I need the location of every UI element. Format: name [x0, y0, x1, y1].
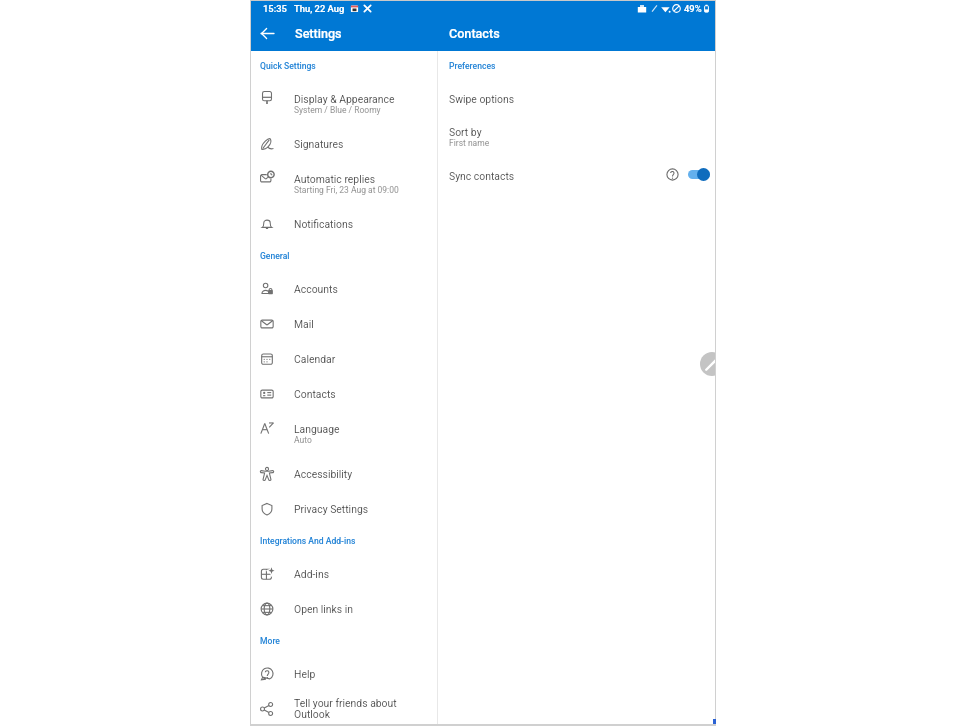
- staticText: Help: [294, 668, 316, 680]
- button[interactable]: Contacts: [250, 376, 437, 411]
- button[interactable]: Mail: [250, 306, 437, 341]
- button[interactable]: Accessibility: [250, 456, 437, 491]
- button[interactable]: Display & Appearance: [250, 81, 437, 126]
- button[interactable]: Signatures: [250, 126, 437, 161]
- staticText: Contacts: [294, 388, 336, 400]
- button[interactable]: Back: [250, 16, 285, 51]
- staticText: Privacy Settings: [294, 503, 369, 515]
- staticText: Contacts: [449, 26, 500, 41]
- button[interactable]: Help: [250, 656, 437, 691]
- staticText: Accounts: [294, 283, 338, 295]
- staticText: Swipe options: [449, 93, 515, 105]
- staticText: Integrations And Add-ins: [260, 536, 356, 546]
- button[interactable]: Tell your friends about Outlook: [250, 691, 437, 726]
- staticText: Accessibility: [294, 468, 353, 480]
- staticText: Display & Appearance: [294, 93, 395, 105]
- staticText: Settings: [295, 26, 342, 41]
- button[interactable]: Automatic replies: [250, 161, 437, 206]
- other: Help: [666, 168, 679, 181]
- button[interactable]: Language: [250, 411, 437, 456]
- staticText: Add-ins: [294, 568, 329, 580]
- button[interactable]: Sync contacts: [438, 158, 716, 193]
- staticText: Tell your friends about Outlook: [294, 697, 397, 721]
- staticText: Sync contacts: [449, 170, 515, 182]
- staticText: Mail: [294, 318, 314, 330]
- staticText: Preferences: [449, 61, 496, 71]
- staticText: 49%: [684, 3, 702, 14]
- staticText: Signatures: [294, 138, 344, 150]
- staticText: Automatic replies: [294, 173, 376, 185]
- button[interactable]: Open links in: [250, 591, 437, 626]
- button[interactable]: Calendar: [250, 341, 437, 376]
- staticText: Calendar: [294, 353, 336, 365]
- button[interactable]: Privacy Settings: [250, 491, 437, 526]
- button[interactable]: Sort by: [438, 116, 716, 158]
- staticText: Sort by: [449, 126, 482, 138]
- staticText: Language: [294, 423, 340, 435]
- staticText: Notifications: [294, 218, 354, 230]
- staticText: Starting Fri, 23 Aug at 09:00: [294, 185, 399, 195]
- staticText: Thu, 22 Aug: [294, 3, 345, 14]
- button[interactable]: Accounts: [250, 271, 437, 306]
- button[interactable]: Notifications: [250, 206, 437, 241]
- staticText: More: [260, 636, 280, 646]
- staticText: First name: [449, 138, 490, 148]
- staticText: General: [260, 251, 290, 261]
- staticText: Auto: [294, 435, 312, 445]
- button[interactable]: Add-ins: [250, 556, 437, 591]
- staticText: System / Blue / Roomy: [294, 105, 381, 115]
- staticText: Open links in: [294, 603, 354, 615]
- button[interactable]: Resize panes: [700, 352, 716, 376]
- staticText: Quick Settings: [260, 61, 316, 71]
- button[interactable]: Sync contacts toggle: [688, 167, 710, 181]
- staticText: 15:35: [263, 3, 287, 14]
- button[interactable]: Swipe options: [438, 81, 716, 116]
